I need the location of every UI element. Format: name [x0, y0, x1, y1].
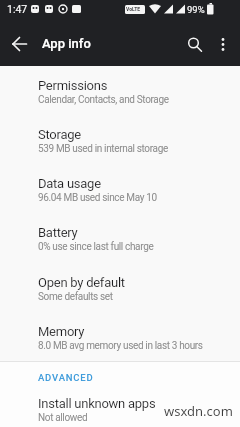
button[interactable]: Open by default: [0, 264, 240, 313]
staticText: 96.04 MB used since May 10: [38, 192, 157, 204]
staticText: ADVANCED: [38, 372, 94, 383]
staticText: Open by default: [38, 275, 125, 290]
staticText: VoLTE: [126, 6, 141, 12]
button[interactable]: [212, 18, 240, 66]
staticText: Storage: [38, 127, 81, 142]
button[interactable]: [180, 18, 210, 66]
staticText: Permissions: [38, 78, 108, 93]
button[interactable]: [0, 18, 40, 66]
button[interactable]: Memory: [0, 313, 240, 362]
staticText: wsxdn.com: [164, 402, 233, 420]
staticText: App info: [42, 36, 91, 51]
staticText: 539 MB used in internal storage: [38, 143, 168, 155]
staticText: 99%: [187, 4, 205, 15]
staticText: 8.0 MB avg memory used in last 3 hours: [38, 340, 203, 352]
staticText: Battery: [38, 225, 78, 240]
button[interactable]: Data usage: [0, 165, 240, 214]
staticText: 0% use since last full charge: [38, 241, 154, 253]
button[interactable]: Install unknown apps: [0, 385, 240, 427]
staticText: Calendar, Contacts, and Storage: [38, 94, 169, 106]
staticText: Install unknown apps: [38, 396, 156, 411]
staticText: Data usage: [38, 176, 101, 191]
staticText: Some defaults set: [38, 291, 113, 303]
button[interactable]: Permissions: [0, 67, 240, 116]
button[interactable]: Battery: [0, 214, 240, 263]
button[interactable]: Storage: [0, 116, 240, 165]
staticText: Not allowed: [38, 412, 88, 424]
staticText: 1:47: [7, 3, 28, 15]
staticText: Memory: [38, 324, 85, 339]
